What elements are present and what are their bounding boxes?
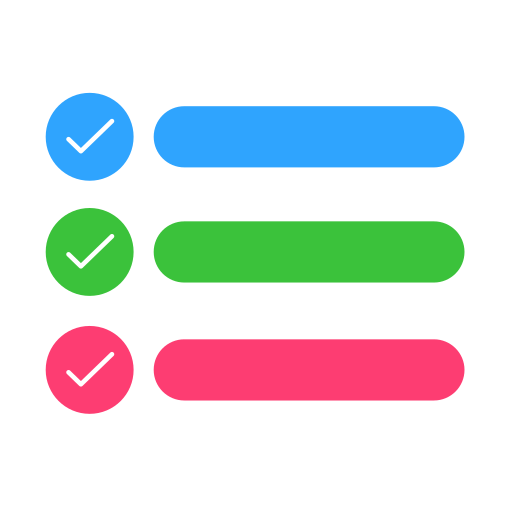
button[interactable]: First task, completed xyxy=(46,93,464,181)
button[interactable]: Second task, completed xyxy=(46,208,464,296)
button[interactable]: Third task, completed xyxy=(46,326,464,414)
